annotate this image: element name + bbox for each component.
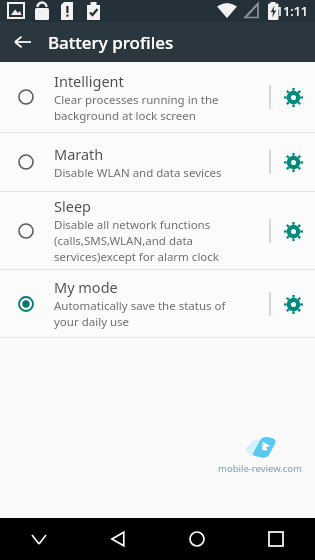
staticText: (calls,SMS,WLAN,and data [54, 233, 194, 249]
button[interactable]: Settings [271, 209, 315, 253]
staticText: Intelligent [54, 71, 124, 91]
button[interactable]: Settings [271, 140, 315, 184]
button[interactable]: Recent apps [236, 518, 315, 560]
button[interactable]: Hide keyboard [0, 518, 78, 560]
staticText: 11:11 [276, 3, 309, 20]
staticText: services)except for alarm clock [54, 249, 219, 265]
staticText: Disable all network functions [54, 217, 211, 233]
staticText: Automatically save the status of [54, 298, 226, 314]
staticText: background at lock screen [54, 108, 196, 124]
button[interactable]: Settings [271, 282, 315, 326]
staticText: Battery profiles [48, 31, 174, 54]
button[interactable]: Settings [271, 75, 315, 119]
staticText: mobile-review.com [218, 462, 302, 475]
button[interactable]: Back [78, 518, 157, 560]
staticText: Clear processes running in the [54, 92, 219, 108]
staticText: Disable WLAN and data sevices [54, 165, 222, 181]
button[interactable]: Marath [0, 133, 315, 191]
staticText: Sleep [54, 196, 91, 216]
button[interactable]: Intelligent [0, 62, 315, 132]
button[interactable]: Home [157, 518, 236, 560]
staticText: your daily use [54, 314, 130, 330]
staticText: Marath [54, 144, 104, 164]
button[interactable]: My mode [0, 270, 315, 337]
button[interactable]: Sleep [0, 192, 315, 269]
button[interactable]: Back [8, 27, 38, 57]
staticText: My mode [54, 277, 118, 297]
